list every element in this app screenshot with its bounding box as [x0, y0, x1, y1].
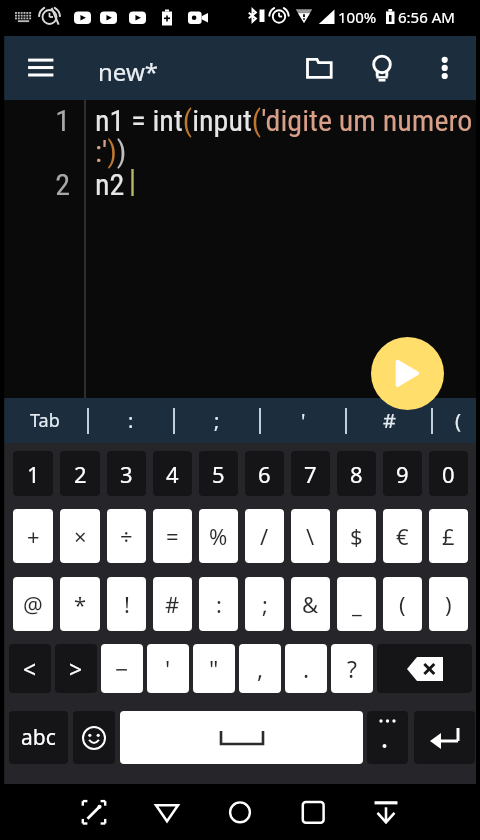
button[interactable]: 6 — [245, 451, 284, 496]
button[interactable]: Home — [192, 784, 288, 840]
button[interactable]: = — [153, 509, 192, 563]
button[interactable]: € — [383, 509, 422, 563]
staticText: ; — [262, 589, 268, 619]
button[interactable]: Recents — [288, 784, 384, 840]
staticText: € — [396, 521, 409, 551]
staticText: 5 — [212, 459, 225, 489]
staticText: ' — [301, 407, 306, 434]
button[interactable]: \ — [291, 509, 330, 563]
button[interactable]: Fullscreen — [0, 784, 96, 840]
staticText: 0 — [442, 459, 455, 489]
staticText: 2 — [74, 459, 87, 489]
button[interactable]: ) — [429, 577, 468, 631]
button[interactable]: / — [245, 509, 284, 563]
staticText: # — [165, 589, 180, 619]
staticText: £ — [442, 521, 455, 551]
button[interactable]: 9 — [383, 451, 422, 496]
staticText: 6:56 AM — [398, 7, 455, 27]
staticText: Tab — [30, 408, 60, 433]
staticText: ? — [347, 653, 357, 684]
button[interactable]: * — [60, 577, 100, 631]
button[interactable]: ; — [245, 577, 284, 631]
button[interactable]: ÷ — [107, 509, 146, 563]
staticText: ' — [165, 653, 171, 684]
staticText: @ — [23, 589, 43, 619]
button[interactable]: − — [101, 644, 143, 693]
button[interactable]: Space — [120, 711, 363, 764]
button[interactable]: Tab — [2, 398, 87, 443]
button[interactable]: ( — [383, 577, 422, 631]
staticText: − — [115, 653, 129, 684]
staticText: + — [27, 521, 40, 551]
button[interactable]: + — [13, 509, 53, 563]
button[interactable]: < — [9, 644, 51, 693]
staticText: \ — [306, 521, 315, 551]
button[interactable]: Run — [371, 337, 444, 410]
button[interactable]: ' — [261, 398, 345, 443]
button[interactable]: ! — [107, 577, 146, 631]
staticText: $ — [350, 521, 363, 551]
staticText: > — [69, 653, 83, 684]
button[interactable]: £ — [429, 509, 468, 563]
button[interactable]: 3 — [107, 451, 146, 496]
button[interactable]: > — [55, 644, 97, 693]
button[interactable]: . — [285, 644, 327, 693]
button[interactable]: 7 — [291, 451, 330, 496]
staticText: 100% — [338, 7, 377, 27]
staticText: 9 — [396, 459, 409, 489]
button[interactable]: Open file — [299, 50, 339, 90]
staticText: < — [23, 653, 37, 684]
button[interactable]: Tips — [362, 50, 402, 90]
staticText: 7 — [304, 459, 317, 489]
button[interactable]: ( — [433, 398, 480, 443]
button[interactable] — [367, 711, 408, 764]
button[interactable]: @ — [13, 577, 53, 631]
button[interactable]: _ — [337, 577, 376, 631]
button[interactable]: Back — [96, 784, 192, 840]
staticText: 2 — [50, 167, 70, 202]
staticText: ! — [124, 589, 130, 619]
staticText: " — [209, 653, 219, 684]
button[interactable]: Menu — [16, 48, 56, 88]
staticText: 1 — [50, 103, 70, 138]
staticText: = — [166, 521, 179, 551]
button[interactable]: Hide keyboard — [384, 784, 480, 840]
button[interactable]: % — [199, 509, 238, 563]
staticText: : — [216, 589, 222, 619]
button[interactable]: ' — [147, 644, 189, 693]
staticText: 3 — [120, 459, 133, 489]
button[interactable]: ; — [175, 398, 259, 443]
button[interactable]: # — [153, 577, 192, 631]
button[interactable]: ? — [331, 644, 373, 693]
button[interactable]: 0 — [429, 451, 468, 496]
button[interactable]: Enter — [414, 711, 475, 764]
staticText: n2 — [95, 167, 125, 202]
button[interactable]: Backspace — [377, 644, 472, 693]
staticText: 1 — [27, 459, 40, 489]
button[interactable]: # — [347, 398, 431, 443]
button[interactable]: : — [89, 398, 173, 443]
staticText: 6 — [258, 459, 271, 489]
button[interactable]: , — [239, 644, 281, 693]
button[interactable]: 5 — [199, 451, 238, 496]
button[interactable]: " — [193, 644, 235, 693]
button[interactable]: × — [60, 509, 100, 563]
button[interactable]: abc — [9, 711, 68, 764]
button[interactable]: $ — [337, 509, 376, 563]
button[interactable]: 1 — [13, 451, 53, 496]
button[interactable]: & — [291, 577, 330, 631]
button[interactable]: More options — [424, 50, 464, 90]
button[interactable]: 8 — [337, 451, 376, 496]
button[interactable]: Emoji — [73, 711, 115, 764]
button[interactable]: 4 — [153, 451, 192, 496]
staticText: ; — [214, 407, 220, 434]
staticText: × — [74, 521, 87, 551]
staticText: ( — [455, 407, 461, 434]
staticText: , — [257, 653, 264, 684]
staticText: / — [260, 521, 269, 551]
button[interactable]: : — [199, 577, 238, 631]
staticText: ( — [399, 589, 406, 619]
button[interactable]: 2 — [60, 451, 100, 496]
staticText: * — [74, 589, 87, 619]
staticText: . — [303, 653, 310, 684]
